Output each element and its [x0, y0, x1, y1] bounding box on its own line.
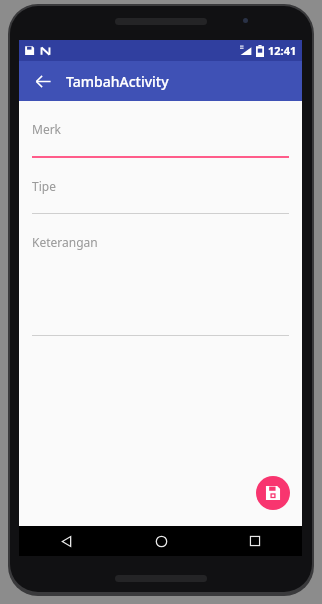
staticText: 12:41 — [268, 43, 297, 58]
staticText: Tipe — [32, 178, 56, 194]
button[interactable]: Save — [256, 476, 290, 510]
staticText: Merk — [32, 121, 62, 137]
button[interactable]: Recent apps — [208, 526, 302, 556]
button[interactable]: Keterangan — [32, 234, 289, 336]
staticText: TambahActivity — [66, 72, 169, 91]
button[interactable]: Back — [28, 66, 58, 96]
button[interactable]: Tipe — [32, 178, 289, 214]
button[interactable]: Home — [114, 526, 208, 556]
button[interactable]: Merk — [32, 121, 289, 158]
button[interactable]: Back — [19, 526, 114, 556]
staticText: Keterangan — [32, 234, 98, 250]
